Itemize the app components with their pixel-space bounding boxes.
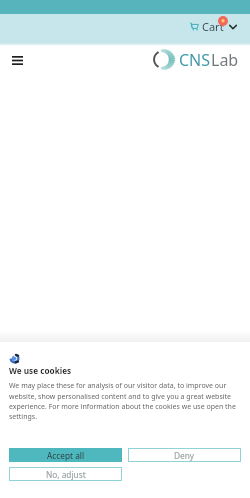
button[interactable]: No, adjust [9,467,122,481]
staticText: Lab [211,49,239,71]
button[interactable]: CNSLab home [151,48,239,71]
staticText: We may place these for analysis of our v… [9,381,236,421]
button[interactable]: Accept all [9,448,122,462]
staticText: No, adjust [46,469,86,480]
button[interactable]: Cart [190,19,237,34]
staticText: Deny [174,450,195,461]
button[interactable]: Deny [128,448,241,462]
staticText: Cart [202,19,224,34]
staticText: Accept all [47,450,85,461]
button[interactable]: Open menu [6,49,28,71]
staticText: CNS [179,49,211,71]
staticText: We use cookies [9,365,72,376]
